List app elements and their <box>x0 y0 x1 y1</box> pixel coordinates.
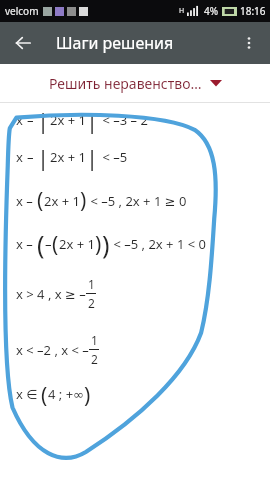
staticText: < –5 <box>99 148 128 166</box>
staticText: Решить неравенство… <box>49 74 202 93</box>
staticText: x – <box>16 235 37 253</box>
staticText: 4% <box>204 4 219 18</box>
staticText: 18:16 <box>240 4 266 18</box>
staticText: x <box>16 111 27 129</box>
staticText: x – <box>16 192 37 210</box>
staticText: 2x + 1 <box>50 111 86 129</box>
staticText: | <box>37 105 50 135</box>
button[interactable]: More options <box>232 26 266 60</box>
staticText: x < –2 , x < – <box>16 341 89 359</box>
staticText: 2x + 1 <box>50 148 86 166</box>
staticText: Шаги решения <box>56 32 174 54</box>
staticText: 2 <box>88 295 95 311</box>
button[interactable]: Решить неравенство… <box>0 64 270 102</box>
staticText: H <box>179 6 185 16</box>
staticText: 2 <box>91 351 98 367</box>
staticText: – <box>45 235 52 253</box>
staticText: ) <box>84 381 91 407</box>
staticText: x <box>16 148 27 166</box>
staticText: 4 ; +∞ <box>48 385 84 403</box>
staticText: x > 4 , x ≥ – <box>16 285 86 303</box>
staticText: velcom <box>5 4 39 18</box>
button[interactable]: Back <box>6 26 40 60</box>
staticText: < –3 – 2 <box>99 111 148 129</box>
staticText: ) <box>80 186 87 215</box>
staticText: 2x + 1 <box>44 192 80 210</box>
staticText: ( <box>37 186 44 215</box>
staticText: ( <box>41 381 48 407</box>
staticText: 1 <box>91 332 98 348</box>
staticText: x ∈ <box>16 385 41 403</box>
staticText: < –5 , 2x + 1 < 0 <box>110 235 206 253</box>
staticText: < –5 , 2x + 1 ≥ 0 <box>87 192 187 210</box>
staticText: – <box>27 111 37 129</box>
staticText: 1 <box>88 276 95 292</box>
staticText: | <box>86 142 99 172</box>
staticText: – <box>27 148 37 166</box>
staticText: | <box>86 105 99 135</box>
staticText: 2x + 1 <box>59 235 95 253</box>
staticText: ( <box>37 227 45 261</box>
staticText: ) <box>95 230 102 259</box>
staticText: | <box>37 142 50 172</box>
staticText: ) <box>102 227 110 261</box>
staticText: ( <box>52 230 59 259</box>
